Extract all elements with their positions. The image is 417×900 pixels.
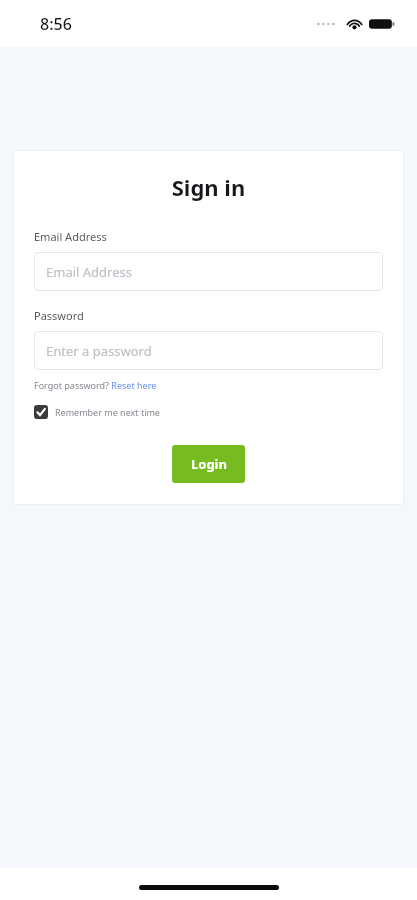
staticText: Email Address: [46, 263, 132, 281]
staticText: Password: [34, 308, 84, 323]
staticText: Forgot password? Reset here: [34, 379, 157, 391]
staticText: Remember me next time: [55, 406, 160, 418]
button[interactable]: Forgot password? Reset here: [34, 379, 157, 391]
button[interactable]: Login: [172, 445, 245, 483]
staticText: 8:56: [40, 13, 72, 35]
staticText: Email Address: [34, 229, 107, 244]
button[interactable]: Enter a password: [34, 331, 383, 370]
button[interactable]: Remember me next time: [34, 405, 160, 419]
staticText: Enter a password: [46, 342, 152, 360]
staticText: Sign in: [34, 172, 383, 202]
button[interactable]: Email Address: [34, 252, 383, 291]
staticText: Login: [191, 455, 227, 473]
